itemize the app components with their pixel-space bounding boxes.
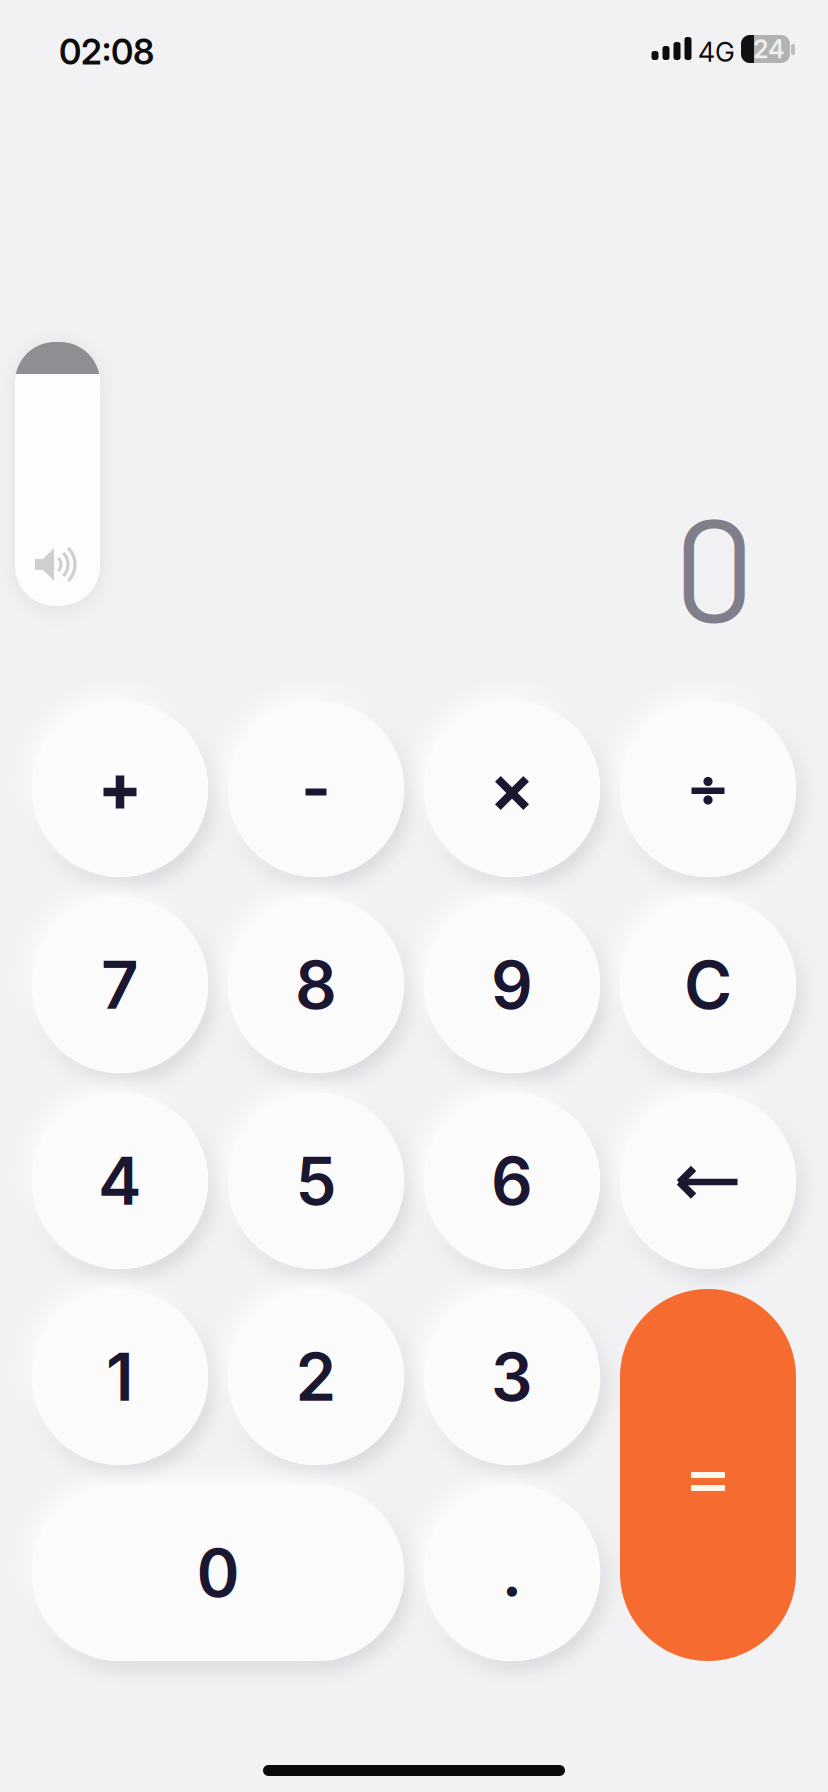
staticText: .: [501, 1532, 522, 1611]
staticText: 2: [295, 1337, 336, 1416]
button[interactable]: 8: [228, 897, 404, 1073]
staticText: 4: [98, 1141, 142, 1220]
staticText: C: [684, 945, 732, 1024]
staticText: 1: [106, 1337, 134, 1416]
button[interactable]: 4: [32, 1093, 208, 1269]
staticText: 0: [673, 479, 754, 651]
button[interactable]: C: [620, 897, 796, 1073]
button[interactable]: 9: [424, 897, 600, 1073]
button[interactable]: 1: [32, 1289, 208, 1465]
staticText: 3: [491, 1337, 533, 1416]
button[interactable]: Delete: [620, 1093, 796, 1269]
staticText: 02:08: [59, 31, 154, 73]
button[interactable]: 0: [32, 1485, 404, 1661]
button[interactable]: .: [424, 1485, 600, 1661]
button[interactable]: 5: [228, 1093, 404, 1269]
staticText: 8: [295, 945, 337, 1024]
button[interactable]: 3: [424, 1289, 600, 1465]
staticText: 0: [196, 1533, 239, 1612]
button[interactable]: Subtract: [228, 701, 404, 877]
staticText: 9: [491, 945, 533, 1024]
staticText: 5: [295, 1141, 336, 1220]
staticText: 4G: [698, 36, 735, 68]
button[interactable]: Multiply: [424, 701, 600, 877]
button[interactable]: 2: [228, 1289, 404, 1465]
button[interactable]: Equals: [620, 1289, 796, 1661]
staticText: 24: [753, 34, 785, 64]
button[interactable]: 7: [32, 897, 208, 1073]
staticText: 7: [101, 945, 139, 1024]
staticText: 6: [491, 1141, 533, 1220]
button[interactable]: Divide: [620, 701, 796, 877]
button[interactable]: Add: [32, 701, 208, 877]
button[interactable]: 6: [424, 1093, 600, 1269]
